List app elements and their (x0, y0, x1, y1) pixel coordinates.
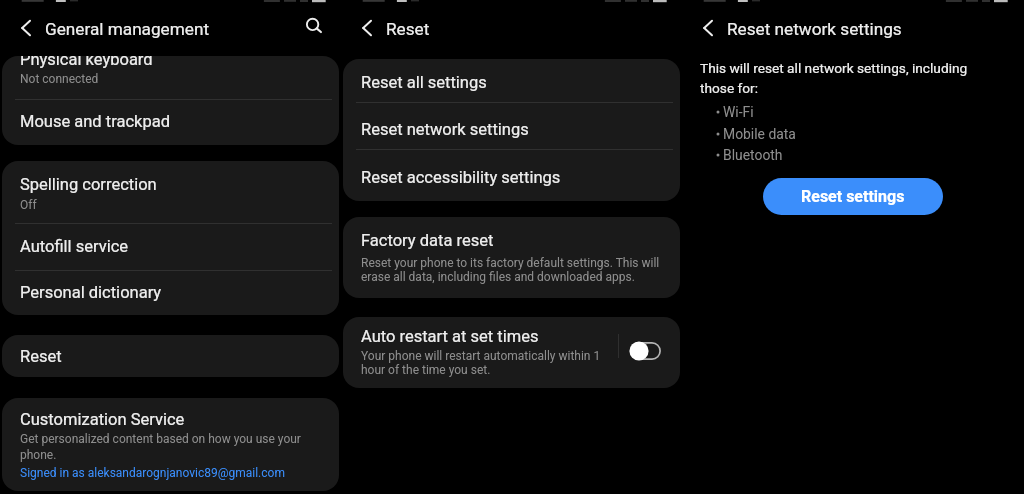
staticText: Customization Service (20, 410, 185, 429)
button[interactable]: Reset (2, 335, 339, 377)
button[interactable]: Auto restart at set times toggle (621, 331, 669, 371)
staticText: Signed in as aleksandarognjanovic89@gmai… (20, 466, 285, 480)
staticText: General management (45, 19, 210, 39)
staticText: Reset all settings (361, 73, 487, 92)
button[interactable]: Reset accessibility settings (343, 149, 680, 201)
staticText: Bluetooth (723, 147, 783, 163)
staticText: Reset (386, 19, 430, 39)
button[interactable]: Search (302, 15, 324, 37)
staticText: Auto restart at set times (361, 327, 539, 346)
button[interactable]: Auto restart at set times (343, 317, 680, 388)
button[interactable]: Mouse and trackpad (2, 99, 339, 145)
staticText: Your phone will restart automatically wi… (361, 349, 601, 377)
button[interactable]: Autofill service (2, 223, 339, 270)
staticText: Personal dictionary (20, 283, 162, 302)
staticText: Autofill service (20, 237, 129, 256)
button[interactable]: Reset settings (763, 178, 943, 215)
button[interactable]: Reset all settings (343, 59, 680, 102)
button[interactable]: Spelling correction (2, 161, 339, 223)
staticText: Factory data reset (361, 231, 494, 250)
button[interactable]: Navigate up (15, 17, 37, 39)
staticText: Off (20, 198, 37, 212)
staticText: This will reset all network settings, in… (700, 60, 968, 96)
button[interactable]: Navigate up (356, 17, 378, 39)
staticText: Reset (20, 347, 62, 366)
staticText: Not connected (20, 72, 99, 86)
staticText: Reset network settings (727, 19, 902, 39)
staticText: Reset your phone to its factory default … (361, 256, 660, 284)
staticText: Reset accessibility settings (361, 168, 561, 187)
staticText: Physical keyboard (20, 56, 153, 69)
staticText: Mouse and trackpad (20, 112, 170, 131)
button[interactable]: Personal dictionary (2, 270, 339, 315)
staticText: Reset settings (801, 187, 905, 206)
button[interactable]: Navigate up (697, 17, 719, 39)
staticText: Mobile data (723, 126, 796, 142)
button[interactable]: Factory data reset (343, 217, 680, 298)
staticText: Spelling correction (20, 175, 157, 194)
staticText: Wi-Fi (723, 104, 754, 120)
staticText: Reset network settings (361, 120, 529, 139)
button[interactable]: Physical keyboard (2, 56, 339, 99)
staticText: Get personalized content based on how yo… (20, 432, 301, 461)
button[interactable]: Reset network settings (343, 102, 680, 149)
button[interactable]: Customization Service (2, 398, 339, 491)
